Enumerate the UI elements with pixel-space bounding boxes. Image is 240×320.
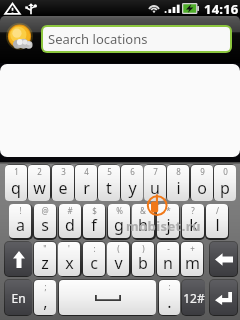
staticText: y bbox=[128, 177, 137, 199]
staticText: ( bbox=[117, 243, 120, 254]
staticText: & bbox=[140, 205, 146, 216]
staticText: 5 bbox=[107, 166, 112, 177]
staticText: / bbox=[216, 205, 219, 216]
button[interactable]: Backspace bbox=[210, 242, 237, 276]
staticText: c bbox=[90, 252, 98, 274]
staticText: . bbox=[167, 291, 172, 313]
button[interactable]: $ bbox=[83, 204, 105, 238]
staticText: l bbox=[215, 214, 220, 236]
button[interactable]: Shift bbox=[5, 242, 32, 276]
staticText: b bbox=[138, 252, 148, 274]
staticText: e bbox=[58, 177, 68, 199]
staticText: * bbox=[166, 205, 171, 216]
button[interactable]: Space bbox=[59, 280, 156, 315]
staticText: t bbox=[106, 177, 112, 199]
button[interactable]: ' bbox=[58, 242, 80, 276]
staticText: # bbox=[67, 205, 73, 216]
button[interactable]: : bbox=[159, 280, 180, 315]
button[interactable]: / bbox=[206, 204, 228, 238]
button[interactable]: # bbox=[59, 204, 81, 238]
button[interactable]: 7 bbox=[144, 165, 166, 201]
staticText: a bbox=[16, 214, 25, 236]
staticText: i bbox=[176, 177, 181, 199]
staticText: ) bbox=[142, 243, 145, 254]
staticText: : bbox=[93, 243, 96, 254]
staticText: 0 bbox=[223, 166, 228, 177]
staticText: ' bbox=[68, 243, 70, 254]
button[interactable]: 2 bbox=[28, 165, 50, 201]
button[interactable]: 8 bbox=[167, 165, 189, 201]
staticText: $ bbox=[92, 205, 97, 216]
staticText: @ bbox=[41, 205, 49, 216]
button[interactable]: @ bbox=[34, 204, 56, 238]
staticText: x bbox=[65, 252, 74, 274]
staticText: Search locations bbox=[48, 30, 148, 48]
staticText: h bbox=[138, 214, 148, 236]
staticText: 1 bbox=[14, 166, 19, 177]
button[interactable]: 6 bbox=[121, 165, 143, 201]
button[interactable]: % bbox=[108, 204, 130, 238]
staticText: , bbox=[43, 291, 48, 313]
staticText: n bbox=[163, 252, 173, 274]
button[interactable]: ) bbox=[132, 242, 154, 276]
button[interactable]: 1 bbox=[5, 165, 27, 201]
staticText: ; bbox=[44, 281, 47, 292]
button[interactable]: 9 bbox=[191, 165, 213, 201]
button[interactable]: Search locations bbox=[43, 27, 230, 51]
staticText: w bbox=[33, 177, 46, 199]
staticText: 12# bbox=[183, 290, 205, 306]
staticText: 9 bbox=[200, 166, 205, 177]
staticText: u bbox=[150, 177, 160, 199]
staticText: En bbox=[11, 290, 26, 306]
staticText: 6 bbox=[130, 166, 135, 177]
staticText: z bbox=[41, 252, 49, 274]
button[interactable]: + bbox=[181, 242, 203, 276]
staticText: ? bbox=[191, 205, 195, 216]
staticText: 8 bbox=[176, 166, 181, 177]
staticText: d bbox=[65, 214, 75, 236]
button[interactable]: Weather bbox=[5, 24, 34, 53]
staticText: 3 bbox=[61, 166, 66, 177]
button[interactable]: Enter bbox=[210, 280, 237, 315]
staticText: % bbox=[116, 205, 123, 216]
staticText: f bbox=[91, 214, 97, 236]
staticText: p bbox=[220, 177, 230, 199]
button[interactable]: 4 bbox=[75, 165, 97, 201]
button[interactable]: ? bbox=[182, 204, 204, 238]
staticText: mobiset.ru bbox=[126, 217, 201, 235]
button[interactable]: 3 bbox=[52, 165, 74, 201]
staticText: + bbox=[190, 243, 195, 254]
staticText: m bbox=[185, 252, 200, 274]
staticText: 14:16 bbox=[204, 0, 239, 16]
button[interactable]: 0 bbox=[214, 165, 236, 201]
button[interactable]: : bbox=[83, 242, 105, 276]
staticText: k bbox=[189, 214, 198, 236]
staticText: : bbox=[168, 281, 171, 292]
button[interactable]: " bbox=[34, 242, 56, 276]
staticText: o bbox=[197, 177, 207, 199]
staticText: g bbox=[114, 214, 124, 236]
staticText: 4 bbox=[84, 166, 89, 177]
staticText: s bbox=[41, 214, 49, 236]
staticText: r bbox=[83, 177, 90, 199]
button[interactable]: 5 bbox=[98, 165, 120, 201]
staticText: q bbox=[11, 177, 21, 199]
staticText: 2 bbox=[37, 166, 42, 177]
staticText: v bbox=[114, 252, 123, 274]
staticText: 7 bbox=[153, 166, 158, 177]
button[interactable]: ; bbox=[34, 280, 56, 315]
staticText: " bbox=[43, 243, 47, 254]
button[interactable]: En bbox=[5, 280, 32, 315]
staticText: ! bbox=[19, 205, 22, 216]
button[interactable]: - bbox=[157, 242, 179, 276]
button[interactable]: ! bbox=[9, 204, 31, 238]
button[interactable]: & bbox=[132, 204, 154, 238]
button[interactable]: 12# bbox=[182, 280, 205, 315]
staticText: - bbox=[167, 243, 170, 254]
staticText: j bbox=[166, 214, 171, 236]
button[interactable]: * bbox=[157, 204, 179, 238]
button[interactable]: ( bbox=[107, 242, 129, 276]
